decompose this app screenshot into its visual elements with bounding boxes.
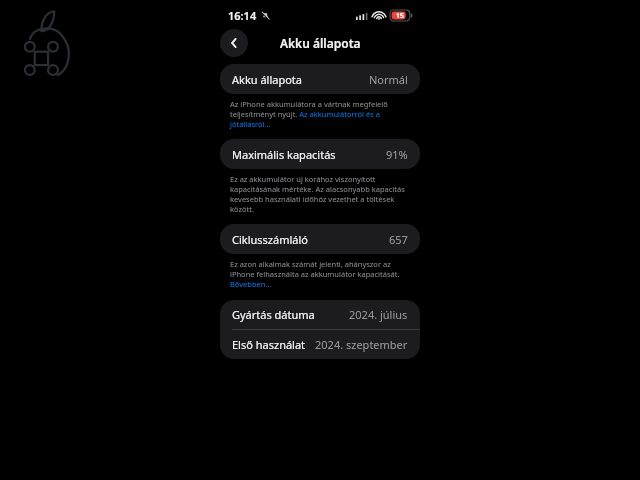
staticText: 2024. július [349, 307, 408, 322]
staticText: Maximális kapacitás [232, 147, 336, 162]
staticText: Gyártás dátuma [232, 307, 315, 322]
staticText: Ez az akkumulátor új korához viszonyítot… [230, 174, 416, 214]
button[interactable]: Vissza [220, 29, 248, 57]
staticText: Normál [369, 72, 408, 87]
button[interactable]: Ciklusszámláló [220, 224, 420, 254]
staticText: 15 [396, 11, 405, 21]
staticText: Első használat [232, 337, 306, 352]
staticText: 91% [386, 147, 408, 162]
staticText: Az iPhone akkumulátora a vártnak megfele… [230, 99, 416, 129]
staticText: Akku állapota [232, 72, 303, 87]
button[interactable]: Gyártás dátuma [220, 300, 420, 329]
button[interactable]: Akku állapota [220, 64, 420, 94]
staticText: Akku állapota [280, 35, 361, 51]
staticText: Ez azon alkalmak számát jelenti, ahánysz… [230, 259, 416, 289]
staticText: 16:14 [228, 8, 257, 23]
staticText: 657 [389, 232, 408, 247]
staticText: Ciklusszámláló [232, 232, 308, 247]
staticText: 2024. szeptember [315, 337, 408, 352]
button[interactable]: Maximális kapacitás [220, 139, 420, 169]
button[interactable]: Első használat [220, 330, 420, 359]
